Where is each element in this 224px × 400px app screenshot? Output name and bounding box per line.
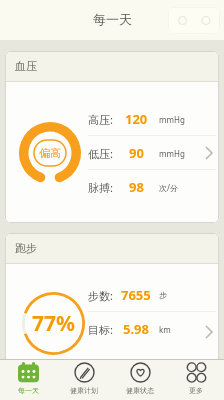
staticText: 77% — [32, 309, 75, 338]
button[interactable]: 77% — [22, 292, 85, 355]
button[interactable]: 步数: — [88, 278, 167, 311]
button[interactable]: 更多 — [168, 362, 224, 400]
staticText: 目标: — [88, 322, 113, 337]
staticText: 脉搏: — [88, 180, 113, 195]
button[interactable]: 低压: — [88, 136, 185, 169]
staticText: 步 — [159, 290, 167, 300]
staticText: 健康状态 — [126, 386, 154, 395]
button[interactable] — [168, 7, 220, 34]
staticText: 90 — [129, 144, 144, 162]
staticText: 低压: — [88, 146, 113, 161]
button[interactable]: 每一天 — [0, 362, 56, 400]
staticText: 偏高 — [39, 146, 61, 160]
staticText: 血压 — [15, 59, 37, 73]
staticText: 120 — [125, 110, 148, 128]
button[interactable]: 脉搏: — [88, 170, 178, 203]
staticText: 每一天 — [93, 11, 132, 27]
staticText: 次/分 — [159, 182, 178, 193]
button[interactable]: 健康状态 — [112, 362, 168, 400]
staticText: mmHg — [159, 148, 185, 159]
staticText: 5.98 — [123, 320, 149, 338]
button[interactable]: 健康计划 — [56, 362, 112, 400]
button[interactable]: 目标: — [88, 312, 171, 345]
button[interactable]: 高压: — [88, 102, 185, 135]
staticText: 每一天 — [18, 386, 39, 395]
staticText: 跑步 — [15, 241, 37, 255]
staticText: 高压: — [88, 112, 113, 127]
staticText: 98 — [129, 178, 144, 196]
staticText: 更多 — [189, 386, 203, 395]
button[interactable]: 偏高 — [19, 122, 81, 184]
staticText: km — [159, 324, 171, 335]
staticText: 健康计划 — [70, 386, 98, 395]
staticText: mmHg — [159, 114, 185, 125]
staticText: 步数: — [88, 288, 113, 303]
staticText: 7655 — [121, 286, 151, 304]
